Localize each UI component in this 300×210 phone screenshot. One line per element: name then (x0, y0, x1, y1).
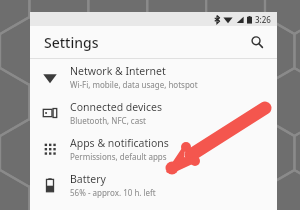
staticText: Connected devices (70, 100, 163, 114)
button[interactable]: Apps & notifications (30, 131, 277, 167)
staticText: 3:26 (255, 14, 271, 25)
staticText: Battery (70, 172, 106, 186)
staticText: Network & Internet (70, 64, 166, 78)
staticText: Permissions, default apps (70, 151, 167, 162)
button[interactable]: Network & Internet (30, 59, 277, 95)
staticText: Wi-Fi, mobile, data usage, hotspot (70, 79, 198, 90)
staticText: 56% - approx. 10 h. left (70, 187, 156, 198)
staticText: Bluetooth, NFC, cast (70, 115, 146, 126)
button[interactable]: Battery (30, 167, 277, 203)
staticText: Apps & notifications (70, 136, 169, 150)
button[interactable]: Connected devices (30, 95, 277, 131)
staticText: Settings (44, 33, 99, 52)
button[interactable]: Search (247, 32, 267, 52)
